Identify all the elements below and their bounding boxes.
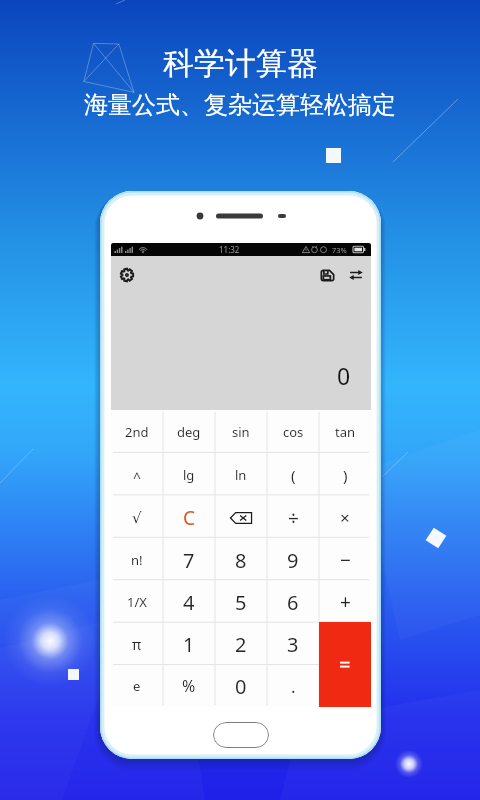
staticText: 4 [183, 589, 195, 616]
staticText: tan [335, 423, 356, 441]
button[interactable]: n! [111, 539, 163, 581]
staticText: cos [283, 423, 304, 441]
staticText: 9 [287, 547, 299, 574]
staticText: 1/X [127, 593, 147, 611]
button[interactable]: ÷ [267, 496, 319, 539]
staticText: sin [232, 423, 250, 441]
button[interactable]: ln [215, 453, 267, 496]
button[interactable]: lg [163, 453, 215, 496]
button[interactable]: 7 [163, 539, 215, 581]
staticText: ) [343, 465, 348, 485]
button[interactable]: ( [267, 453, 319, 496]
button[interactable]: √ [111, 496, 163, 539]
staticText: n! [131, 551, 143, 569]
button[interactable]: . [267, 665, 319, 707]
button[interactable]: 9 [267, 539, 319, 581]
staticText: = [339, 651, 351, 678]
button[interactable] [319, 665, 371, 707]
staticText: 8 [235, 547, 247, 574]
staticText: + [340, 589, 351, 615]
staticText: ln [235, 466, 247, 484]
button[interactable]: % [163, 665, 215, 707]
staticText: 2nd [125, 423, 149, 441]
button[interactable]: 2 [215, 623, 267, 665]
button[interactable]: C [163, 496, 215, 539]
button[interactable]: 1/X [111, 581, 163, 623]
button[interactable]: × [319, 496, 371, 539]
button[interactable]: 5 [215, 581, 267, 623]
staticText: deg [177, 423, 201, 441]
button[interactable]: deg [163, 410, 215, 453]
button[interactable]: 1 [163, 623, 215, 665]
button[interactable]: ^ [111, 453, 163, 496]
button[interactable]: 3 [267, 623, 319, 665]
button[interactable]: π [111, 623, 163, 665]
staticText: 0 [337, 360, 351, 391]
button[interactable]: Settings [113, 261, 141, 289]
button[interactable]: Home [213, 722, 269, 748]
staticText: ÷ [288, 505, 299, 531]
staticText: 2 [235, 631, 247, 658]
button[interactable]: ) [319, 453, 371, 496]
staticText: lg [183, 466, 195, 484]
staticText: ( [291, 465, 296, 485]
staticText: 0 [235, 673, 247, 700]
button[interactable]: sin [215, 410, 267, 453]
staticText: ^ [133, 468, 142, 487]
button[interactable]: 8 [215, 539, 267, 581]
button[interactable]: 6 [267, 581, 319, 623]
button[interactable] [215, 496, 267, 539]
button[interactable]: cos [267, 410, 319, 453]
button[interactable]: − [319, 539, 371, 581]
staticText: 1 [183, 631, 195, 658]
staticText: . [291, 675, 296, 698]
staticText: % [182, 675, 196, 697]
staticText: 海量公式、复杂运算轻松搞定 [84, 90, 396, 120]
staticText: 科学计算器 [163, 44, 318, 83]
button[interactable]: tan [319, 410, 371, 453]
button[interactable]: = [319, 622, 371, 707]
staticText: 3 [287, 631, 299, 658]
staticText: 73% [332, 245, 347, 255]
staticText: √ [132, 509, 142, 526]
staticText: 11:32 [219, 244, 240, 255]
button[interactable]: 4 [163, 581, 215, 623]
staticText: 7 [183, 547, 195, 574]
button[interactable]: Unit convert [342, 261, 370, 289]
staticText: 5 [235, 589, 247, 616]
button[interactable]: History [313, 261, 341, 289]
staticText: C [183, 505, 196, 531]
button[interactable] [319, 623, 371, 665]
staticText: e [133, 677, 141, 695]
button[interactable]: 2nd [111, 410, 163, 453]
staticText: 6 [287, 589, 299, 616]
button[interactable]: + [319, 581, 371, 623]
staticText: × [340, 506, 350, 529]
button[interactable]: e [111, 665, 163, 707]
staticText: − [340, 547, 351, 573]
button[interactable]: 0 [215, 665, 267, 707]
staticText: π [132, 635, 142, 654]
